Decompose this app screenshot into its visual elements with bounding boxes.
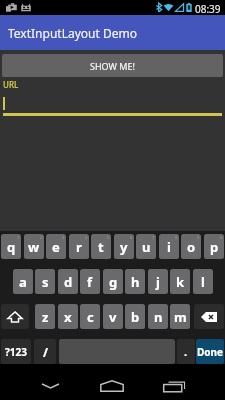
staticText: 2 xyxy=(40,235,43,240)
staticText: 8 xyxy=(175,235,178,240)
button[interactable]: p xyxy=(204,234,224,259)
staticText: 7 xyxy=(152,235,155,240)
staticText: v xyxy=(109,308,117,326)
button[interactable]: n xyxy=(148,304,168,329)
staticText: k xyxy=(176,273,185,291)
staticText: t xyxy=(98,238,104,256)
button[interactable]: e xyxy=(46,234,66,259)
staticText: i xyxy=(167,238,171,256)
staticText: 08:39 xyxy=(195,2,221,16)
staticText: x xyxy=(64,308,72,326)
button[interactable]: r xyxy=(69,234,89,259)
staticText: 5 xyxy=(107,235,110,240)
staticText: 4 xyxy=(85,235,88,240)
staticText: p xyxy=(210,238,219,256)
other: Shift xyxy=(7,311,23,323)
staticText: . xyxy=(184,344,188,359)
staticText: s xyxy=(42,273,49,291)
staticText: u xyxy=(142,238,151,256)
staticText: o xyxy=(187,238,196,256)
staticText: a xyxy=(19,273,27,291)
button[interactable]: o xyxy=(181,234,201,259)
button[interactable]: . xyxy=(177,339,195,364)
staticText: b xyxy=(131,308,140,326)
staticText: SHOW ME! xyxy=(90,60,135,72)
button[interactable]: i xyxy=(159,234,179,259)
other: Backspace xyxy=(201,312,217,322)
staticText: ?123 xyxy=(5,345,27,359)
staticText: y xyxy=(120,238,128,256)
staticText: / xyxy=(43,344,48,360)
button[interactable]: b xyxy=(125,304,145,329)
staticText: n xyxy=(154,308,163,326)
button[interactable]: x xyxy=(58,304,78,329)
staticText: e xyxy=(52,238,60,256)
staticText: f xyxy=(87,273,93,291)
button[interactable]: w xyxy=(24,234,44,259)
staticText: g xyxy=(109,273,118,291)
button[interactable]: Recents xyxy=(150,371,198,400)
staticText: h xyxy=(131,273,140,291)
button[interactable]: a xyxy=(13,269,33,294)
staticText: l xyxy=(201,273,205,291)
staticText: 6 xyxy=(130,235,133,240)
button[interactable]: q xyxy=(1,234,21,259)
button[interactable]: c xyxy=(80,304,100,329)
button[interactable]: h xyxy=(125,269,145,294)
button[interactable]: j xyxy=(148,269,168,294)
button[interactable]: l xyxy=(193,269,213,294)
button[interactable]: Home xyxy=(88,371,136,400)
staticText: TextInputLayout Demo xyxy=(8,25,137,41)
staticText: q xyxy=(7,238,16,256)
button[interactable]: ?123 xyxy=(1,339,31,364)
button[interactable]: SHOW ME! xyxy=(2,54,223,77)
staticText: 0 xyxy=(220,235,223,240)
staticText: 1 xyxy=(17,235,20,240)
staticText: 9 xyxy=(197,235,200,240)
staticText: w xyxy=(28,238,40,256)
button[interactable]: u xyxy=(136,234,156,259)
button[interactable]: Done xyxy=(196,339,224,364)
staticText: m xyxy=(174,308,187,326)
button[interactable]: s xyxy=(35,269,55,294)
staticText: c xyxy=(87,308,94,326)
button[interactable]: k xyxy=(170,269,190,294)
button[interactable]: v xyxy=(103,304,123,329)
button[interactable]: z xyxy=(35,304,55,329)
button[interactable]: g xyxy=(103,269,123,294)
staticText: d xyxy=(64,273,73,291)
button[interactable]: Backspace xyxy=(194,304,224,329)
staticText: r xyxy=(76,238,82,256)
button[interactable]: f xyxy=(80,269,100,294)
button[interactable]: d xyxy=(58,269,78,294)
button[interactable]: y xyxy=(114,234,134,259)
staticText: Done xyxy=(197,345,224,359)
button[interactable]: / xyxy=(34,339,56,364)
button[interactable]: t xyxy=(91,234,111,259)
staticText: URL xyxy=(3,79,19,90)
staticText: 3 xyxy=(62,235,65,240)
button[interactable]: Back xyxy=(26,371,74,400)
staticText: j xyxy=(156,273,160,291)
button[interactable]: Shift xyxy=(1,304,29,329)
staticText: z xyxy=(42,308,49,326)
button[interactable]: m xyxy=(170,304,190,329)
